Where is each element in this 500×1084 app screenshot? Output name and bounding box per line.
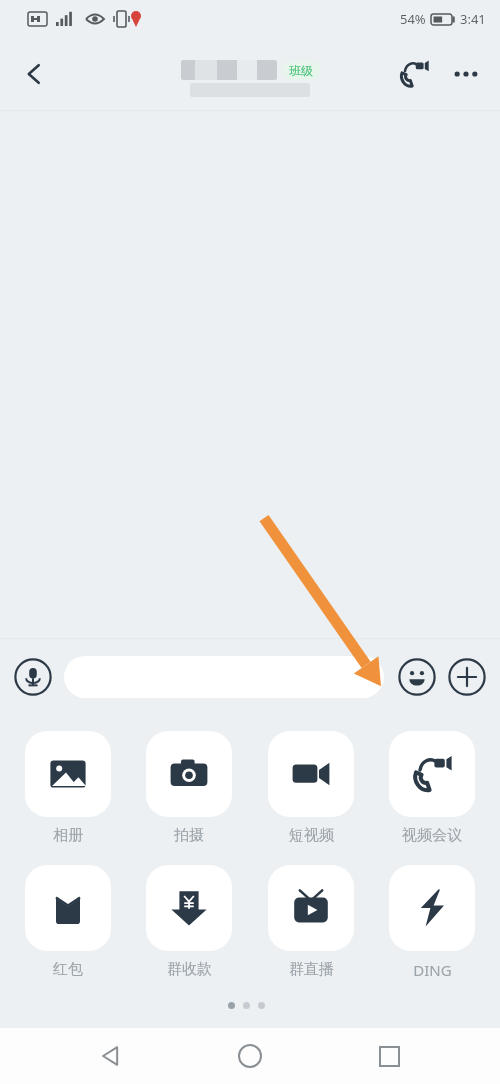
button[interactable]: More functions [446,656,488,698]
staticText: 班级 [289,63,313,78]
button[interactable]: Video call [388,48,440,100]
staticText: 54% [400,10,426,28]
button[interactable]: Back [10,50,58,98]
staticText: 群直播 [289,960,334,979]
staticText: 3:41 [460,10,486,28]
button[interactable]: 短视频 [257,729,365,847]
button[interactable]: Back [83,1028,139,1084]
button[interactable] [64,656,384,698]
staticText: 拍摄 [174,826,204,845]
staticText: 相册 [53,826,83,845]
button[interactable]: 群直播 [257,863,365,981]
staticText: 视频会议 [402,826,462,845]
button[interactable]: DING [378,863,486,982]
button[interactable]: Home [222,1028,278,1084]
button[interactable]: More options [440,48,492,100]
button[interactable]: 相册 [14,729,122,847]
staticText: DING [413,960,452,980]
button[interactable]: 群收款 [135,863,243,981]
button[interactable]: Emoji [396,656,438,698]
staticText: 群收款 [167,960,212,979]
button[interactable]: 红包 [14,863,122,981]
button[interactable]: 视频会议 [378,729,486,847]
button[interactable]: Recents [361,1028,417,1084]
button[interactable]: 拍摄 [135,729,243,847]
staticText: 红包 [53,960,83,979]
staticText: 短视频 [289,826,334,845]
button[interactable]: Voice message [12,656,54,698]
